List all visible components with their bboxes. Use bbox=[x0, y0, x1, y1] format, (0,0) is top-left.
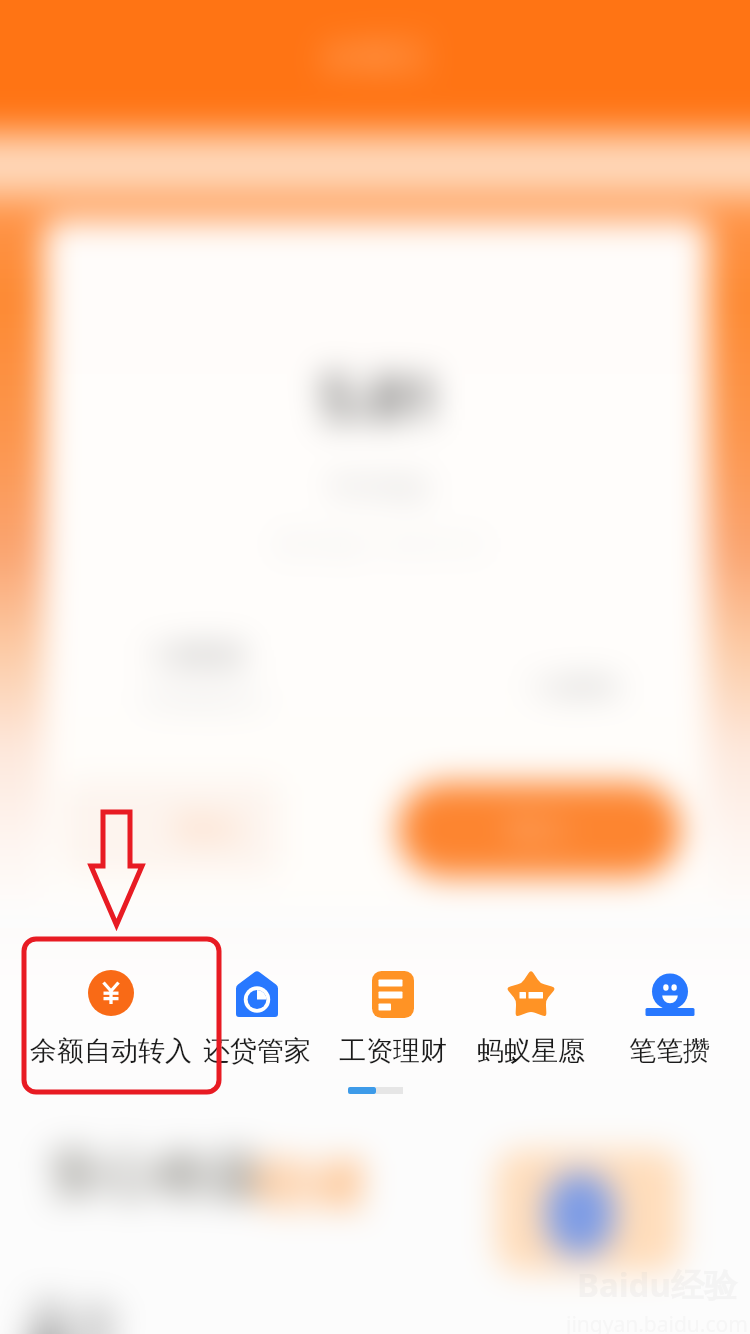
staticText: 安心收益 bbox=[48, 1140, 264, 1208]
staticText: 稳健 bbox=[252, 1146, 368, 1219]
button[interactable]: 笔笔攒 bbox=[600, 968, 738, 1078]
staticText: 5.81 bbox=[320, 356, 440, 438]
staticText: 余额宝 bbox=[321, 34, 429, 79]
staticText: 1.8920 bbox=[150, 634, 244, 675]
button[interactable]: 还贷管家 bbox=[188, 968, 326, 1078]
staticText: 工资理财 bbox=[339, 1034, 447, 1068]
staticText: 基金 bbox=[26, 1292, 122, 1334]
staticText: 蚂蚁星愿 bbox=[477, 1034, 585, 1068]
button[interactable]: 余额自动转入 bbox=[42, 968, 180, 1078]
button[interactable]: 蚂蚁星愿 bbox=[462, 968, 600, 1078]
staticText: 笔笔攒 bbox=[629, 1034, 710, 1068]
staticText: Baidu经验 bbox=[577, 1262, 737, 1307]
staticText: 余额自动转入 bbox=[30, 1034, 192, 1068]
staticText: 还贷管家 bbox=[203, 1034, 311, 1068]
button[interactable]: 工资理财 bbox=[324, 968, 462, 1078]
